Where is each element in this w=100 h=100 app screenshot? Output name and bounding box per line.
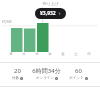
staticText: 水 — [35, 52, 39, 56]
staticText: 20 — [14, 67, 21, 75]
button[interactable]: ¥3,932 — [35, 8, 66, 19]
staticText: ¥3,932 — [40, 10, 56, 17]
button[interactable]: 60 — [68, 67, 89, 80]
staticText: オンライン — [36, 76, 54, 80]
staticText: 木 — [48, 52, 52, 56]
staticText: 6時間34分 — [32, 67, 61, 75]
staticText: 60 — [75, 67, 82, 75]
staticText: 月 — [9, 52, 13, 56]
staticText: ¥3,940 — [2, 20, 12, 24]
button[interactable]: 情報 — [85, 77, 88, 80]
button[interactable]: 情報 — [20, 77, 23, 80]
staticText: 売り上げ — [42, 1, 59, 6]
staticText: 火 — [22, 52, 26, 56]
button[interactable]: 6時間34分 — [31, 67, 62, 80]
staticText: 土 — [74, 52, 78, 56]
staticText: ポイント — [69, 76, 84, 80]
staticText: 日 — [87, 52, 91, 56]
staticText: 金 — [61, 52, 65, 56]
staticText: 件数 — [12, 76, 19, 80]
button[interactable]: 情報 — [55, 77, 58, 80]
button[interactable]: 20 — [11, 67, 24, 80]
